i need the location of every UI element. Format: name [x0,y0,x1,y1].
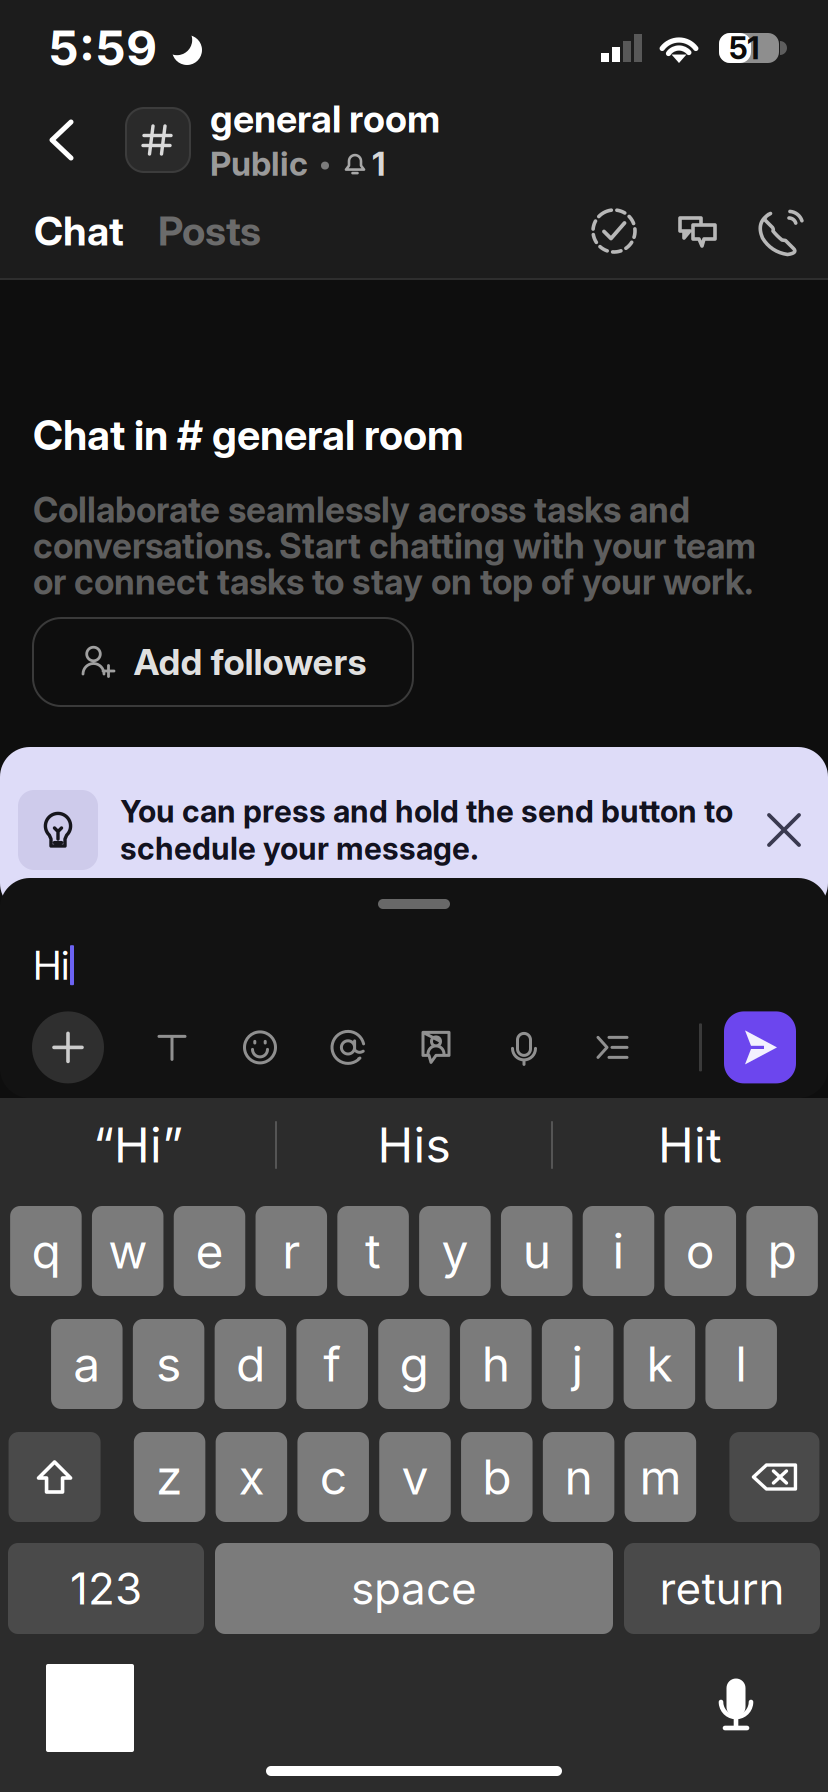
button[interactable]: Emoji keyboard [46,1664,134,1752]
button[interactable]: f [296,1319,368,1409]
staticText: f [323,1335,341,1393]
button[interactable]: x [216,1432,287,1522]
staticText: Posts [158,207,261,255]
staticText: Chat in # general room [33,410,464,460]
staticText: 1 [372,143,386,184]
staticText: x [238,1448,264,1506]
button[interactable]: Hit [553,1098,827,1192]
button[interactable]: a [51,1319,123,1409]
staticText: z [156,1448,183,1506]
staticText: d [236,1335,265,1393]
button[interactable]: k [624,1319,695,1409]
staticText: a [73,1335,100,1393]
button[interactable]: Format text [128,1011,216,1083]
button[interactable]: Shift [9,1432,101,1522]
button[interactable]: v [379,1432,451,1522]
button[interactable]: 123 [8,1543,204,1634]
button[interactable]: Attach image [392,1011,480,1083]
button[interactable]: Messages [656,196,740,266]
staticText: j [572,1335,584,1393]
staticText: His [377,1116,450,1174]
button[interactable]: Call [740,196,824,266]
staticText: n [565,1448,593,1506]
staticText: conversations. Start chatting with your … [33,525,756,567]
button[interactable]: z [134,1432,205,1522]
button[interactable]: Delete [729,1432,819,1522]
button[interactable]: j [542,1319,613,1409]
button[interactable]: Emoji [216,1011,304,1083]
button[interactable]: l [705,1319,777,1409]
button[interactable]: Tasks [572,196,656,266]
button[interactable]: g [378,1319,450,1409]
button[interactable]: t [337,1206,409,1296]
button[interactable]: Posts [144,191,275,271]
button[interactable]: Mention [304,1011,392,1083]
staticText: g [399,1335,428,1393]
staticText: w [108,1222,147,1280]
staticText: m [639,1448,681,1506]
button[interactable]: m [625,1432,696,1522]
button[interactable]: i [583,1206,654,1296]
staticText: v [401,1448,428,1506]
staticText: general room [210,96,440,141]
button[interactable]: return [624,1543,820,1634]
staticText: r [282,1222,300,1280]
button[interactable]: s [133,1319,204,1409]
staticText: “Hi” [93,1116,183,1174]
staticText: p [768,1222,797,1280]
staticText: Chat [34,207,124,255]
button[interactable]: r [255,1206,327,1296]
staticText: Collaborate seamlessly across tasks and [33,489,690,531]
button[interactable]: Chat [0,191,144,271]
staticText: Add followers [133,640,366,684]
button[interactable]: Dictation [708,1676,764,1740]
staticText: Hi [33,941,69,989]
button[interactable]: Record audio [480,1011,568,1083]
staticText: or connect tasks to stay on top of your … [33,561,754,603]
staticText: y [441,1222,468,1280]
staticText: 5:59 [48,19,157,77]
staticText: Hit [658,1116,722,1174]
button[interactable]: “Hi” [1,1098,275,1192]
button[interactable]: Channel icon [126,108,190,172]
button[interactable]: p [746,1206,818,1296]
staticText: q [31,1222,60,1280]
staticText: Public [210,143,308,184]
button[interactable]: c [297,1432,369,1522]
staticText: k [646,1335,672,1393]
button[interactable]: general room [190,102,440,178]
button[interactable]: b [461,1432,533,1522]
button[interactable]: q [10,1206,82,1296]
staticText: h [482,1335,510,1393]
button[interactable]: Add attachment [32,1011,104,1083]
staticText: return [659,1562,784,1615]
staticText: 123 [70,1562,142,1615]
staticText: o [686,1222,715,1280]
button[interactable]: y [419,1206,491,1296]
button[interactable]: Dismiss [752,798,816,862]
staticText: space [351,1562,477,1615]
staticText: 51 [729,29,760,66]
button[interactable]: w [92,1206,163,1296]
staticText: l [735,1335,747,1393]
button[interactable]: Back [0,100,126,180]
button[interactable]: Indent [568,1011,656,1083]
button[interactable]: space [215,1543,613,1634]
button[interactable]: d [215,1319,286,1409]
staticText: s [156,1335,181,1393]
button[interactable]: u [501,1206,572,1296]
button[interactable]: His [277,1098,551,1192]
button[interactable]: e [174,1206,245,1296]
button[interactable]: Add followers [33,618,413,706]
button[interactable]: Send [724,1011,796,1083]
button[interactable]: h [460,1319,532,1409]
staticText: i [612,1222,624,1280]
staticText: u [523,1222,551,1280]
staticText: t [365,1222,381,1280]
button[interactable]: n [543,1432,614,1522]
staticText: b [482,1448,511,1506]
staticText: e [195,1222,223,1280]
staticText: You can press and hold the send button t… [120,793,733,867]
staticText: c [320,1448,347,1506]
button[interactable]: o [664,1206,736,1296]
